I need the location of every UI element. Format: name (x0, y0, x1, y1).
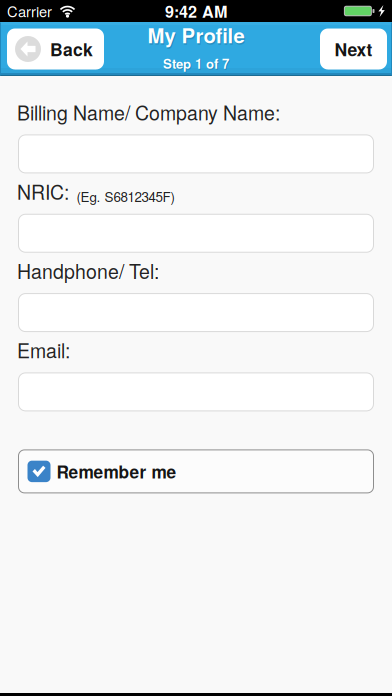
staticText: Carrier (7, 0, 52, 22)
button[interactable]: Remember me (18, 450, 373, 493)
staticText: Billing Name/ Company Name: (17, 98, 280, 126)
staticText: Email: (17, 336, 70, 364)
staticText: Handphone/ Tel: (17, 257, 159, 284)
staticText: NRIC: (17, 177, 69, 205)
staticText: Back (50, 36, 93, 62)
staticText: Step 1 of 7 (163, 54, 229, 73)
button[interactable]: Next (320, 28, 387, 69)
button[interactable]: Back (7, 28, 104, 69)
staticText: Remember me (56, 459, 176, 484)
staticText: (Eg. S6812345F) (76, 187, 174, 206)
staticText: My Profile (148, 22, 245, 51)
staticText: My Profile (147, 20, 244, 49)
staticText: 9:42 AM (165, 0, 227, 23)
staticText: Next (334, 36, 372, 62)
staticText: Step 1 of 7 (164, 55, 230, 74)
